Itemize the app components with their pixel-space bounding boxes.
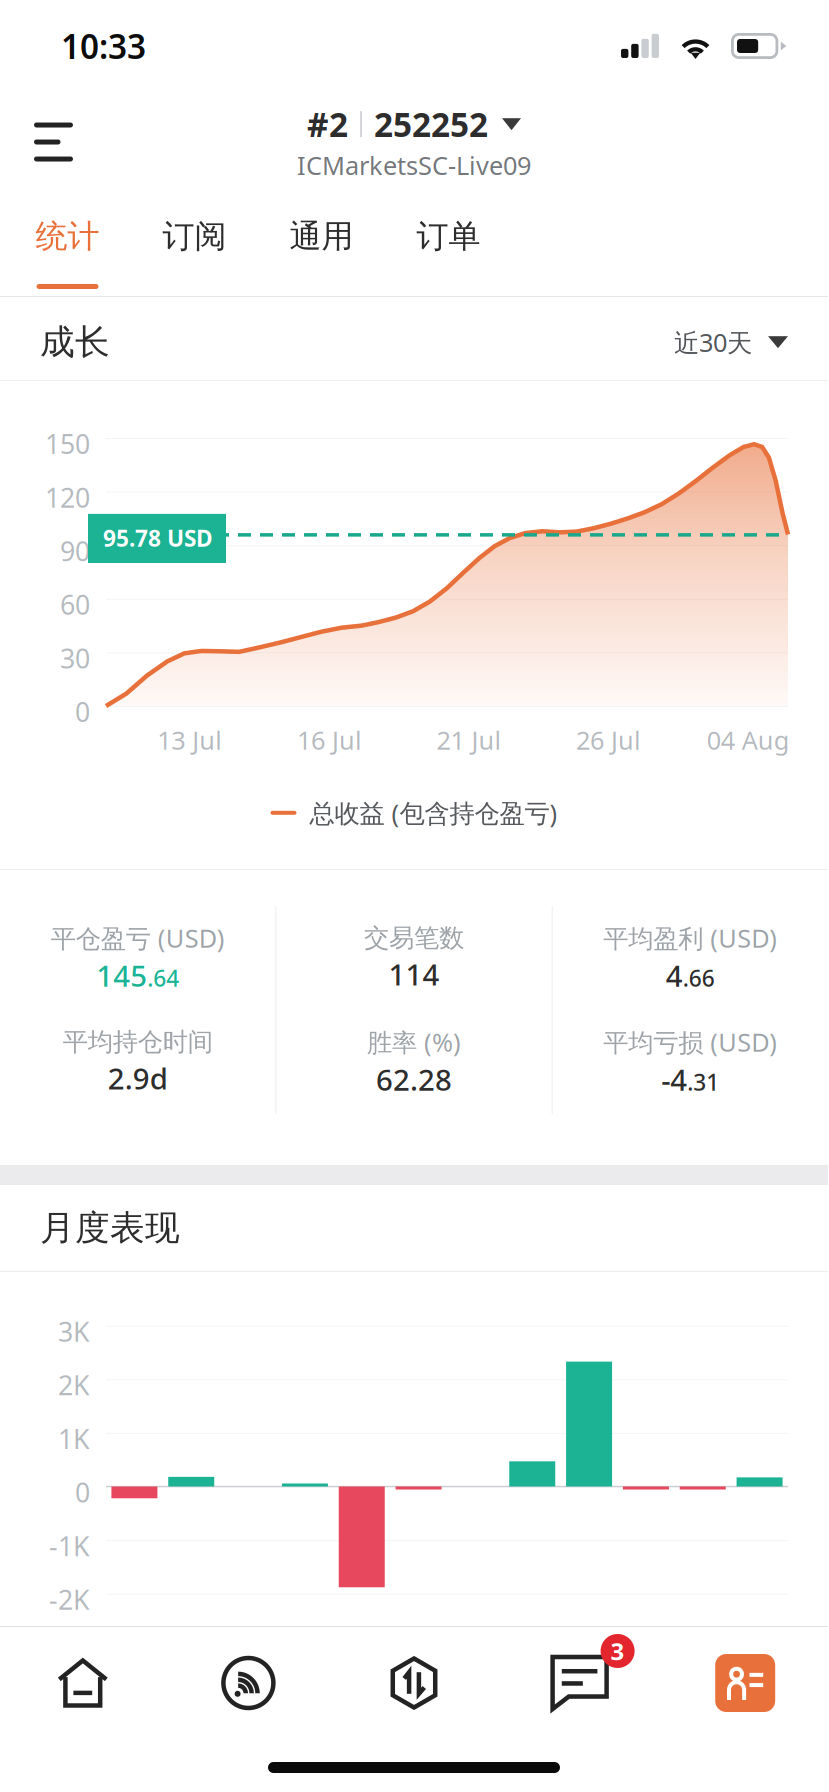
staticText: 交易笔数 <box>364 922 464 954</box>
staticText: 2K <box>58 1367 90 1403</box>
staticText: -2K <box>49 1582 90 1617</box>
staticText: 平仓盈亏 (USD) <box>51 921 225 955</box>
staticText: 胜率 (%) <box>367 1025 461 1059</box>
staticText: 30 <box>60 640 90 676</box>
button[interactable]: 订单 <box>385 192 512 296</box>
staticText: .31 <box>687 1067 719 1097</box>
staticText: 4 <box>666 956 683 995</box>
staticText: 145 <box>96 956 147 995</box>
staticText: 平均亏损 (USD) <box>603 1025 777 1059</box>
button[interactable]: 订阅 <box>131 192 258 296</box>
staticText: 16 Jul <box>297 723 362 757</box>
staticText: 150 <box>45 426 90 461</box>
button[interactable]: Trade <box>331 1627 497 1739</box>
staticText: .64 <box>147 963 179 993</box>
staticText: 统计 <box>35 217 99 256</box>
staticText: 平均持仓时间 <box>63 1026 213 1058</box>
staticText: ICMarketsSC-Live09 <box>297 148 531 182</box>
button[interactable]: Quotes <box>166 1627 331 1739</box>
staticText: 3K <box>58 1314 90 1349</box>
button[interactable]: 通用 <box>258 192 385 296</box>
button[interactable]: Profile <box>662 1627 828 1739</box>
staticText: -1K <box>49 1528 90 1563</box>
staticText: 3 <box>611 1635 625 1667</box>
staticText: 04 Aug <box>707 723 790 757</box>
staticText: 1K <box>58 1421 90 1456</box>
staticText: #2 <box>307 102 348 146</box>
staticText: 62.28 <box>376 1060 452 1099</box>
staticText: 订单 <box>416 217 480 256</box>
staticText: 60 <box>60 587 90 622</box>
staticText: 90 <box>60 533 90 569</box>
staticText: .66 <box>683 963 715 993</box>
staticText: 通用 <box>289 217 353 256</box>
staticText: -4 <box>661 1060 687 1099</box>
button[interactable]: Home <box>0 1627 166 1739</box>
staticText: 26 Jul <box>576 723 641 757</box>
button[interactable]: 统计 <box>4 192 131 296</box>
staticText: 总收益 (包含持仓盈亏) <box>309 796 557 830</box>
staticText: 0 <box>75 694 90 729</box>
staticText: 订阅 <box>162 217 226 256</box>
staticText: 114 <box>388 955 439 994</box>
button[interactable]: Menu <box>0 92 103 191</box>
staticText: 252252 <box>374 102 488 146</box>
staticText: 13 Jul <box>157 723 222 757</box>
staticText: 2.9d <box>108 1059 168 1098</box>
staticText: 21 Jul <box>436 723 501 757</box>
staticText: 0 <box>75 1474 90 1510</box>
staticText: 120 <box>45 480 90 515</box>
button[interactable]: 近30天 <box>662 303 800 381</box>
staticText: 月度表现 <box>40 1207 180 1249</box>
staticText: 95.78 USD <box>103 523 213 553</box>
staticText: 成长 <box>40 321 110 363</box>
staticText: 10:33 <box>61 24 146 68</box>
button[interactable]: Messages <box>497 1627 662 1739</box>
staticText: 近30天 <box>674 325 752 359</box>
staticText: 平均盈利 (USD) <box>603 921 777 955</box>
